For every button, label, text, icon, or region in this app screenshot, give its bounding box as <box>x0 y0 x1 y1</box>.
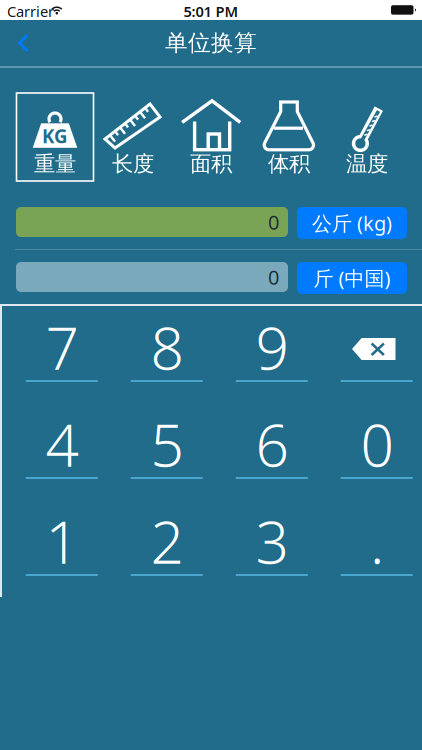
staticText: 3 <box>255 502 288 580</box>
staticText: 2 <box>150 502 183 580</box>
button[interactable]: 公斤 (kg) <box>297 207 407 239</box>
button[interactable]: 斤 (中国) <box>297 262 407 294</box>
staticText: 4 <box>45 405 78 483</box>
button[interactable]: 3 <box>219 500 324 597</box>
button[interactable]: . <box>324 500 422 597</box>
button[interactable]: 6 <box>219 403 324 500</box>
staticText: 0 <box>360 405 393 483</box>
button[interactable]: KG <box>16 89 94 185</box>
button[interactable]: 4 <box>9 403 114 500</box>
staticText: 长度 <box>112 151 154 177</box>
staticText: 温度 <box>346 151 388 177</box>
staticText: 0 <box>268 264 279 290</box>
button[interactable]: Delete <box>324 306 422 403</box>
button[interactable]: Back <box>5 21 49 65</box>
staticText: 单位换算 <box>165 29 257 57</box>
staticText: . <box>370 502 384 580</box>
staticText: 6 <box>255 405 288 483</box>
staticText: 斤 (中国) <box>313 265 390 291</box>
button[interactable]: 9 <box>219 306 324 403</box>
button[interactable]: 长度 <box>94 89 172 185</box>
staticText: 重量 <box>34 151 76 177</box>
staticText: 5 <box>150 405 183 483</box>
staticText: KG <box>42 124 68 148</box>
button[interactable]: 温度 <box>328 89 406 185</box>
button[interactable]: 2 <box>114 500 219 597</box>
staticText: Carrier <box>7 1 54 21</box>
staticText: 公斤 (kg) <box>312 210 392 236</box>
staticText: 8 <box>150 308 183 386</box>
button[interactable]: 8 <box>114 306 219 403</box>
staticText: 1 <box>45 502 78 580</box>
staticText: 7 <box>45 308 78 386</box>
button[interactable]: 0 <box>324 403 422 500</box>
button[interactable]: 体积 <box>250 89 328 185</box>
staticText: 5:01 PM <box>183 1 238 21</box>
staticText: 9 <box>255 308 288 386</box>
staticText: 面积 <box>190 151 232 177</box>
button[interactable]: 1 <box>9 500 114 597</box>
staticText: 0 <box>268 209 279 235</box>
button[interactable]: 5 <box>114 403 219 500</box>
staticText: 体积 <box>268 151 310 177</box>
button[interactable]: 面积 <box>172 89 250 185</box>
button[interactable]: 7 <box>9 306 114 403</box>
